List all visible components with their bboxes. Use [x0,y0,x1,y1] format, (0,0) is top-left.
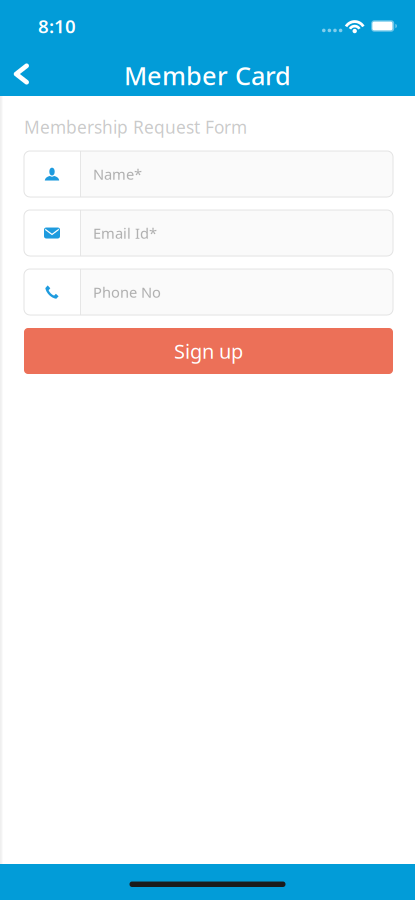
staticText: Phone No [93,282,161,302]
staticText: Name* [93,164,142,184]
staticText: Membership Request Form [24,115,247,138]
staticText: Sign up [174,338,243,364]
button[interactable]: Sign up [24,328,393,374]
staticText: Member Card [124,59,291,92]
button[interactable]: Back [0,48,46,96]
staticText: Email Id* [93,223,157,243]
staticText: 8:10 [38,14,76,38]
